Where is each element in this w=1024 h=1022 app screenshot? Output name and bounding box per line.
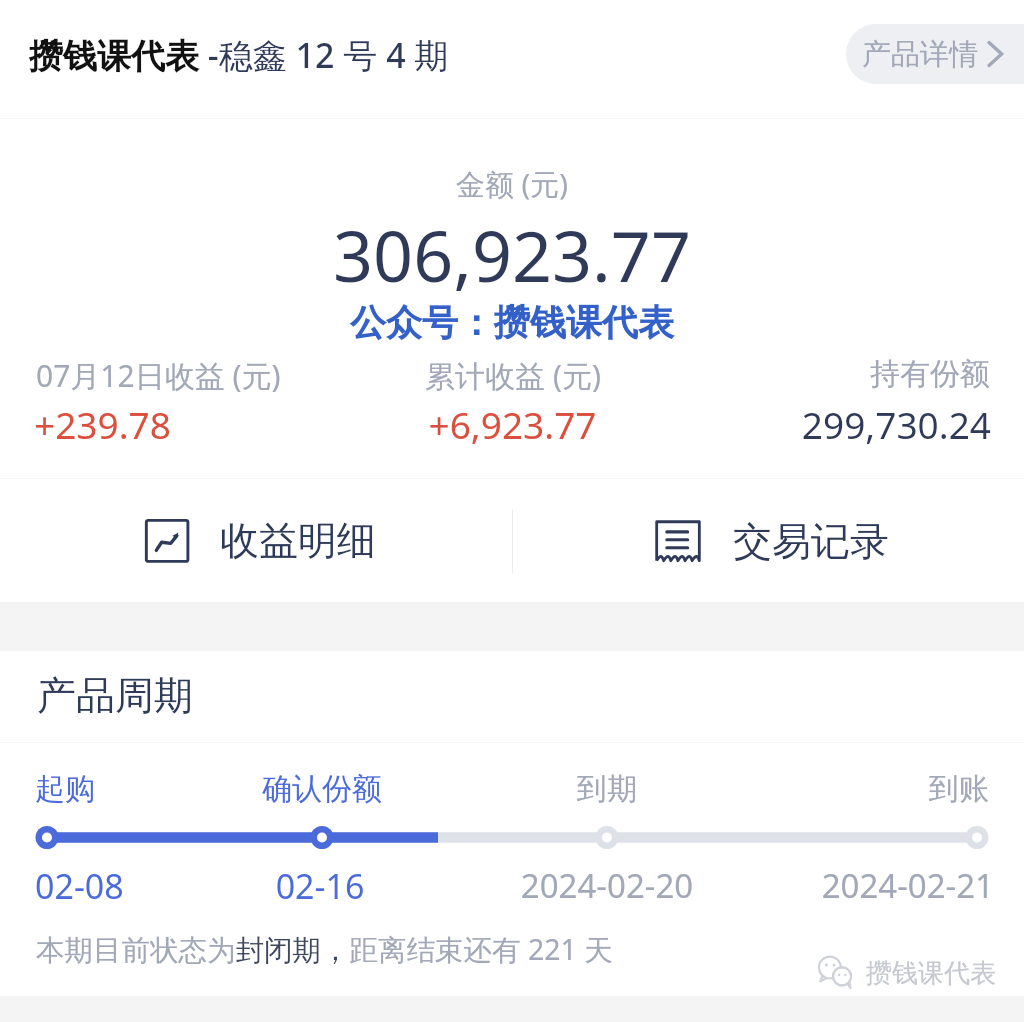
staticText: 攒钱课代表 -稳鑫 12 号 4 期 — [29, 32, 449, 78]
staticText: 299,730.24 — [672, 399, 991, 449]
staticText: 306,923.77 — [0, 207, 1024, 302]
staticText: 2024-02-20 — [427, 863, 787, 908]
staticText: 到期 — [427, 770, 787, 808]
staticText: 收益明细 — [220, 516, 376, 565]
staticText: 2024-02-21 — [0, 863, 994, 908]
button[interactable]: 交易记录 — [514, 479, 1024, 602]
staticText: 02-16 — [140, 863, 500, 909]
staticText: 累计收益 (元) — [354, 355, 672, 396]
staticText: 产品周期 — [37, 671, 193, 720]
other: 交易记录 — [652, 515, 704, 567]
staticText: 到账 — [0, 770, 989, 808]
staticText: +239.78 — [34, 399, 353, 449]
button[interactable]: 收益明细 — [3, 479, 515, 602]
button[interactable]: 产品详情 — [846, 24, 1024, 84]
other: 查看产品详情 — [980, 39, 1010, 69]
staticText: 交易记录 — [733, 517, 889, 566]
staticText: 起购 — [35, 770, 95, 808]
staticText: +6,923.77 — [353, 399, 672, 449]
staticText: 产品详情 — [862, 36, 978, 73]
staticText: 持有份额 — [672, 355, 990, 393]
staticText: 金额 (元) — [0, 164, 1024, 204]
staticText: 07月12日收益 (元) — [36, 355, 354, 396]
staticText: 本期目前状态为封闭期，距离结束还有 221 天 — [36, 930, 613, 969]
staticText: 确认份额 — [142, 770, 502, 808]
staticText: 02-08 — [35, 863, 124, 909]
other: 收益明细 — [142, 515, 193, 566]
staticText: 公众号：攒钱课代表 — [0, 300, 1024, 345]
staticText: 攒钱课代表 — [866, 957, 996, 990]
